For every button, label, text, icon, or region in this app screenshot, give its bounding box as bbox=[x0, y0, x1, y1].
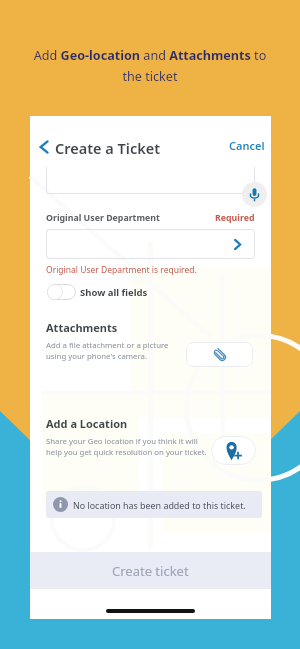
staticText: Add a file attachment or a picture using… bbox=[46, 340, 169, 362]
staticText: Share your Geo location if you think it … bbox=[46, 436, 207, 458]
button[interactable]: Back bbox=[32, 136, 54, 158]
staticText: Add Geo-location and Attachments to the … bbox=[26, 47, 274, 85]
button[interactable]: Create ticket bbox=[30, 552, 271, 589]
staticText: Original User Department is required. bbox=[46, 264, 197, 276]
staticText: Show all fields bbox=[80, 286, 148, 299]
button[interactable]: Original User Department bbox=[46, 229, 255, 259]
button[interactable]: No location has been added to this ticke… bbox=[53, 491, 254, 518]
button[interactable]: Voice input bbox=[242, 182, 267, 207]
staticText: No location has been added to this ticke… bbox=[73, 499, 246, 511]
button[interactable]: Add location bbox=[211, 436, 256, 465]
staticText: Attachments bbox=[46, 320, 118, 335]
staticText: Create ticket bbox=[112, 562, 189, 580]
button[interactable]: Show all fields bbox=[47, 284, 148, 300]
staticText: Required bbox=[215, 212, 255, 224]
button[interactable]: Add attachment bbox=[186, 342, 253, 367]
button[interactable]: Cancel bbox=[220, 138, 265, 153]
staticText: Original User Department bbox=[46, 212, 160, 224]
staticText: Add a Location bbox=[46, 416, 128, 431]
staticText: Cancel bbox=[229, 138, 265, 153]
staticText: Create a Ticket bbox=[55, 138, 161, 158]
button[interactable]: Subject bbox=[46, 167, 255, 194]
